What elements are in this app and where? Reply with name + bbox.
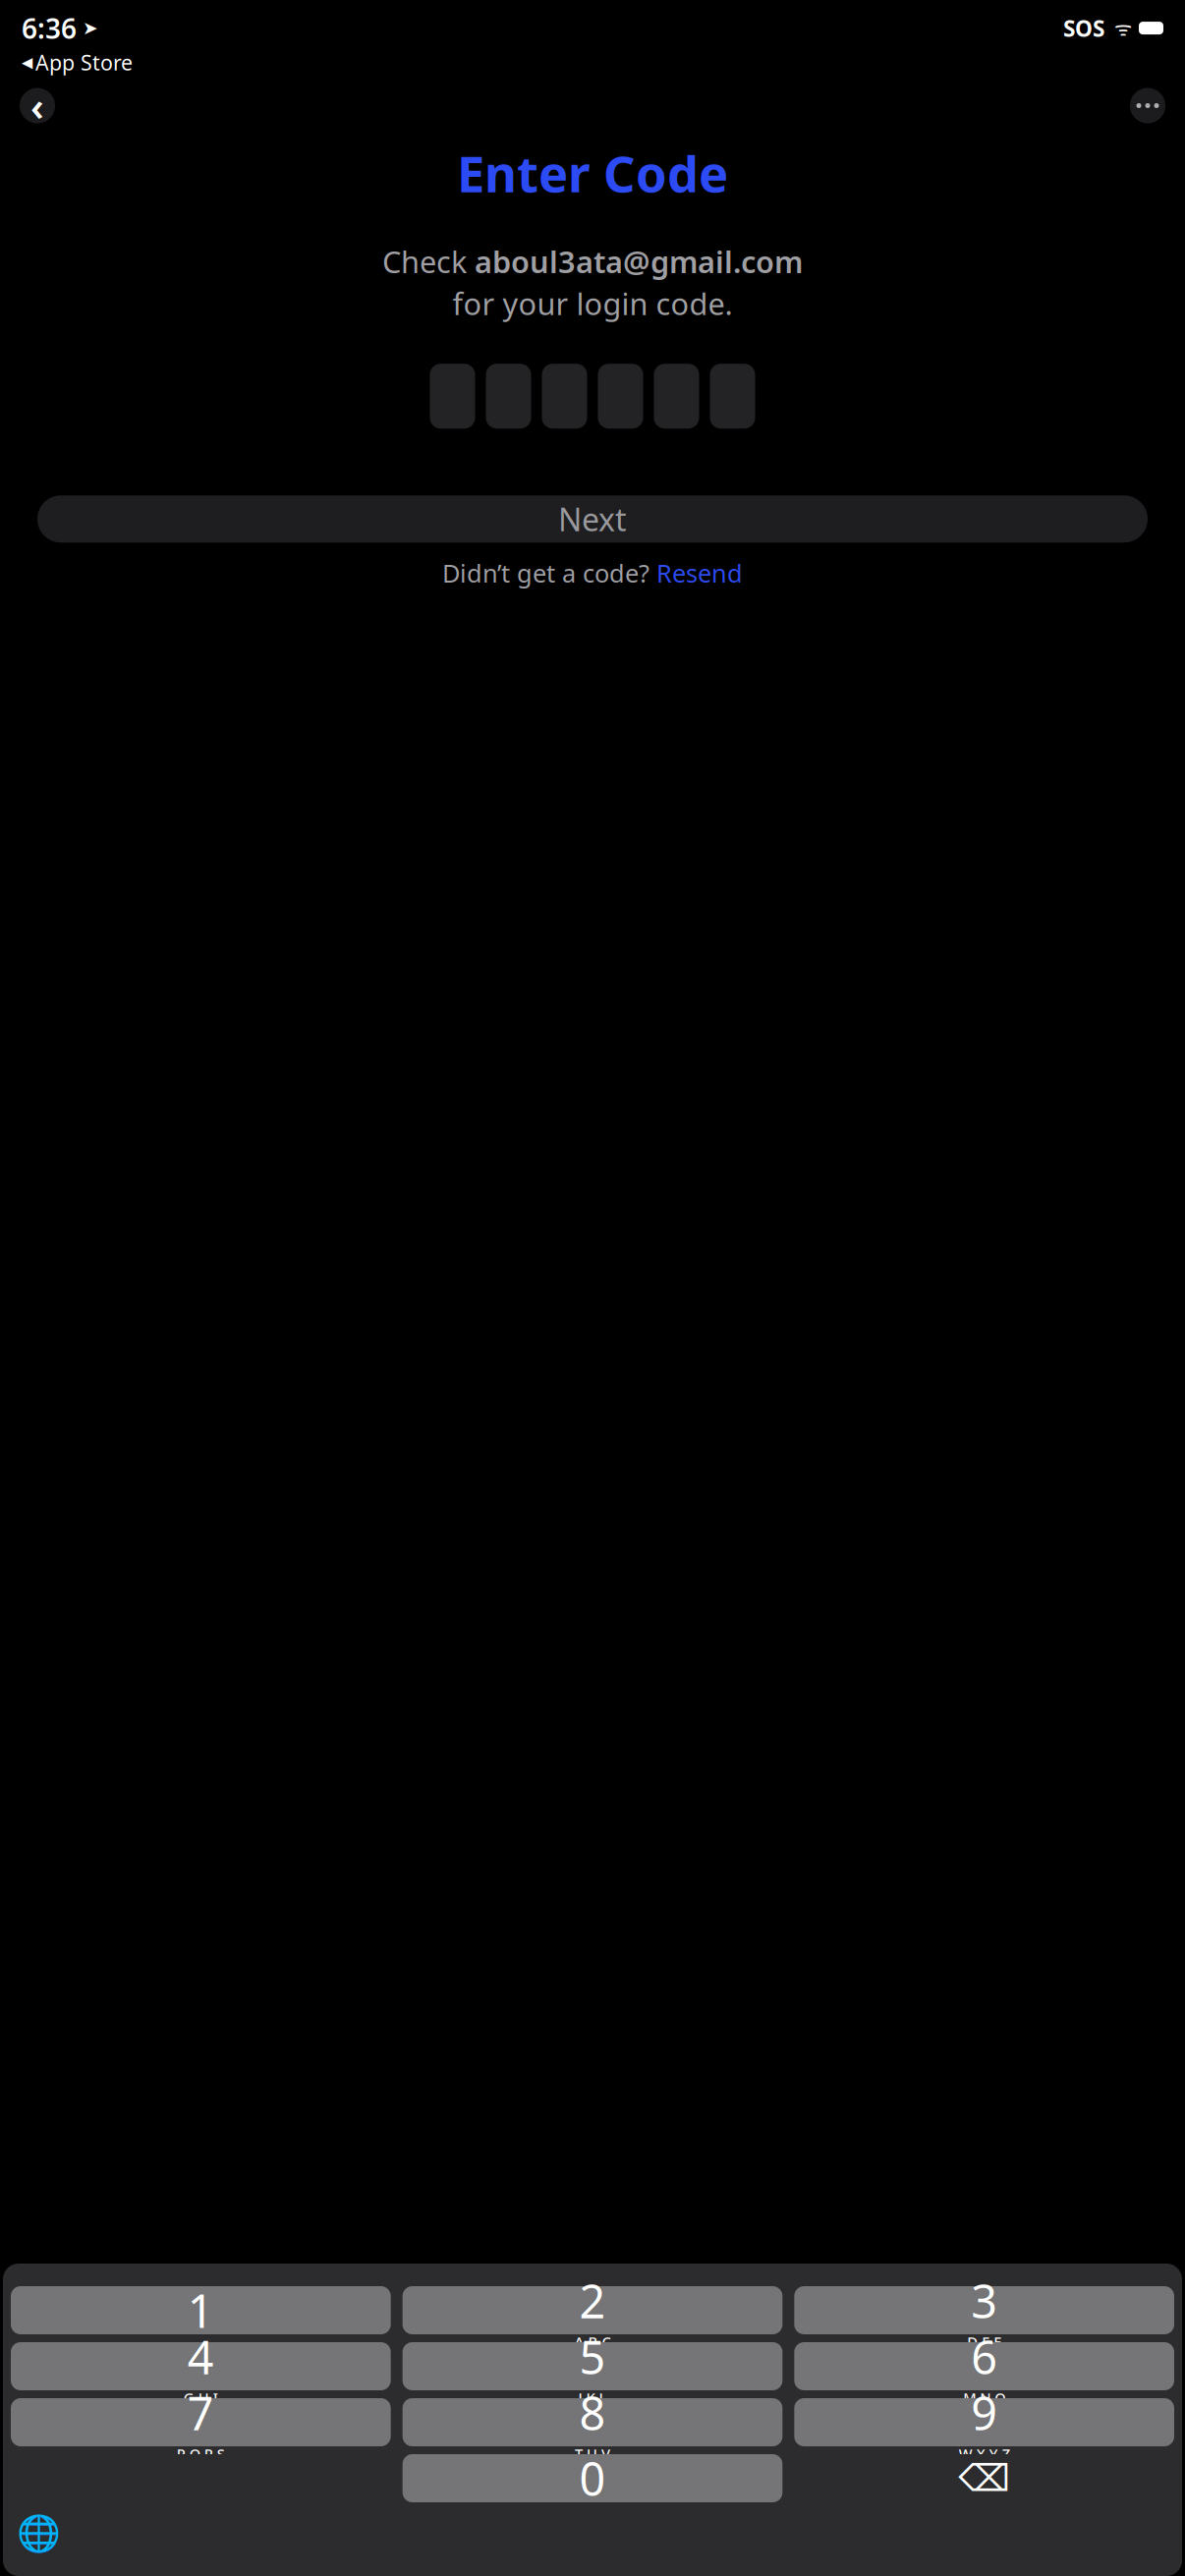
button[interactable]: 2 bbox=[403, 2286, 783, 2334]
staticText: for your login code. bbox=[452, 283, 733, 323]
staticText: ⌫ bbox=[958, 2457, 1010, 2499]
staticText: ◀ bbox=[22, 54, 32, 70]
staticText: A B C bbox=[574, 2332, 611, 2351]
staticText: 3 bbox=[971, 2270, 998, 2331]
staticText: 6 bbox=[971, 2326, 998, 2387]
button[interactable]: 0 bbox=[403, 2454, 783, 2502]
staticText: Enter Code bbox=[457, 140, 728, 206]
staticText: Resend bbox=[656, 556, 743, 589]
staticText: 2 bbox=[579, 2270, 606, 2331]
staticText: 🌐 bbox=[16, 2514, 60, 2554]
staticText: W X Y Z bbox=[959, 2444, 1010, 2463]
button[interactable]: More options bbox=[1130, 88, 1165, 123]
staticText: J K L bbox=[578, 2388, 607, 2407]
button[interactable]: 8 bbox=[403, 2398, 783, 2446]
button[interactable]: 6 bbox=[794, 2342, 1174, 2390]
button[interactable]: Resend bbox=[656, 556, 743, 589]
staticText: M N O bbox=[963, 2388, 1005, 2407]
staticText: 6:36 bbox=[22, 10, 77, 46]
staticText: 8 bbox=[579, 2382, 606, 2443]
staticText: 1 bbox=[187, 2280, 214, 2341]
button[interactable]: 5 bbox=[403, 2342, 783, 2390]
button[interactable]: Change keyboard language bbox=[17, 2512, 60, 2555]
staticText: ➤ bbox=[77, 18, 98, 39]
button[interactable]: Delete bbox=[794, 2454, 1174, 2502]
staticText: G H I bbox=[184, 2388, 218, 2407]
button[interactable]: 3 bbox=[794, 2286, 1174, 2334]
staticText: SOS bbox=[1063, 13, 1104, 43]
staticText: Didn’t get a code? bbox=[442, 556, 656, 589]
staticText: Next bbox=[558, 498, 627, 540]
staticText: App Store bbox=[35, 48, 133, 76]
staticText: aboul3ata@gmail.com bbox=[475, 241, 803, 281]
button[interactable]: Next bbox=[37, 495, 1148, 543]
staticText: 9 bbox=[971, 2382, 998, 2443]
staticText: D E F bbox=[967, 2332, 1001, 2351]
button[interactable]: 7 bbox=[11, 2398, 391, 2446]
button[interactable]: 9 bbox=[794, 2398, 1174, 2446]
button[interactable]: 1 bbox=[11, 2286, 391, 2334]
button[interactable]: 4 bbox=[11, 2342, 391, 2390]
staticText: ᯤ bbox=[1104, 15, 1132, 41]
staticText: 5 bbox=[579, 2326, 606, 2387]
staticText: ‹ bbox=[30, 80, 44, 132]
staticText: Check bbox=[382, 241, 475, 281]
staticText: P Q R S bbox=[177, 2444, 225, 2463]
button[interactable]: Back bbox=[20, 88, 55, 123]
staticText: 4 bbox=[187, 2326, 214, 2387]
staticText: T U V bbox=[575, 2444, 610, 2463]
staticText: 7 bbox=[187, 2382, 214, 2443]
staticText: 0 bbox=[579, 2448, 606, 2509]
